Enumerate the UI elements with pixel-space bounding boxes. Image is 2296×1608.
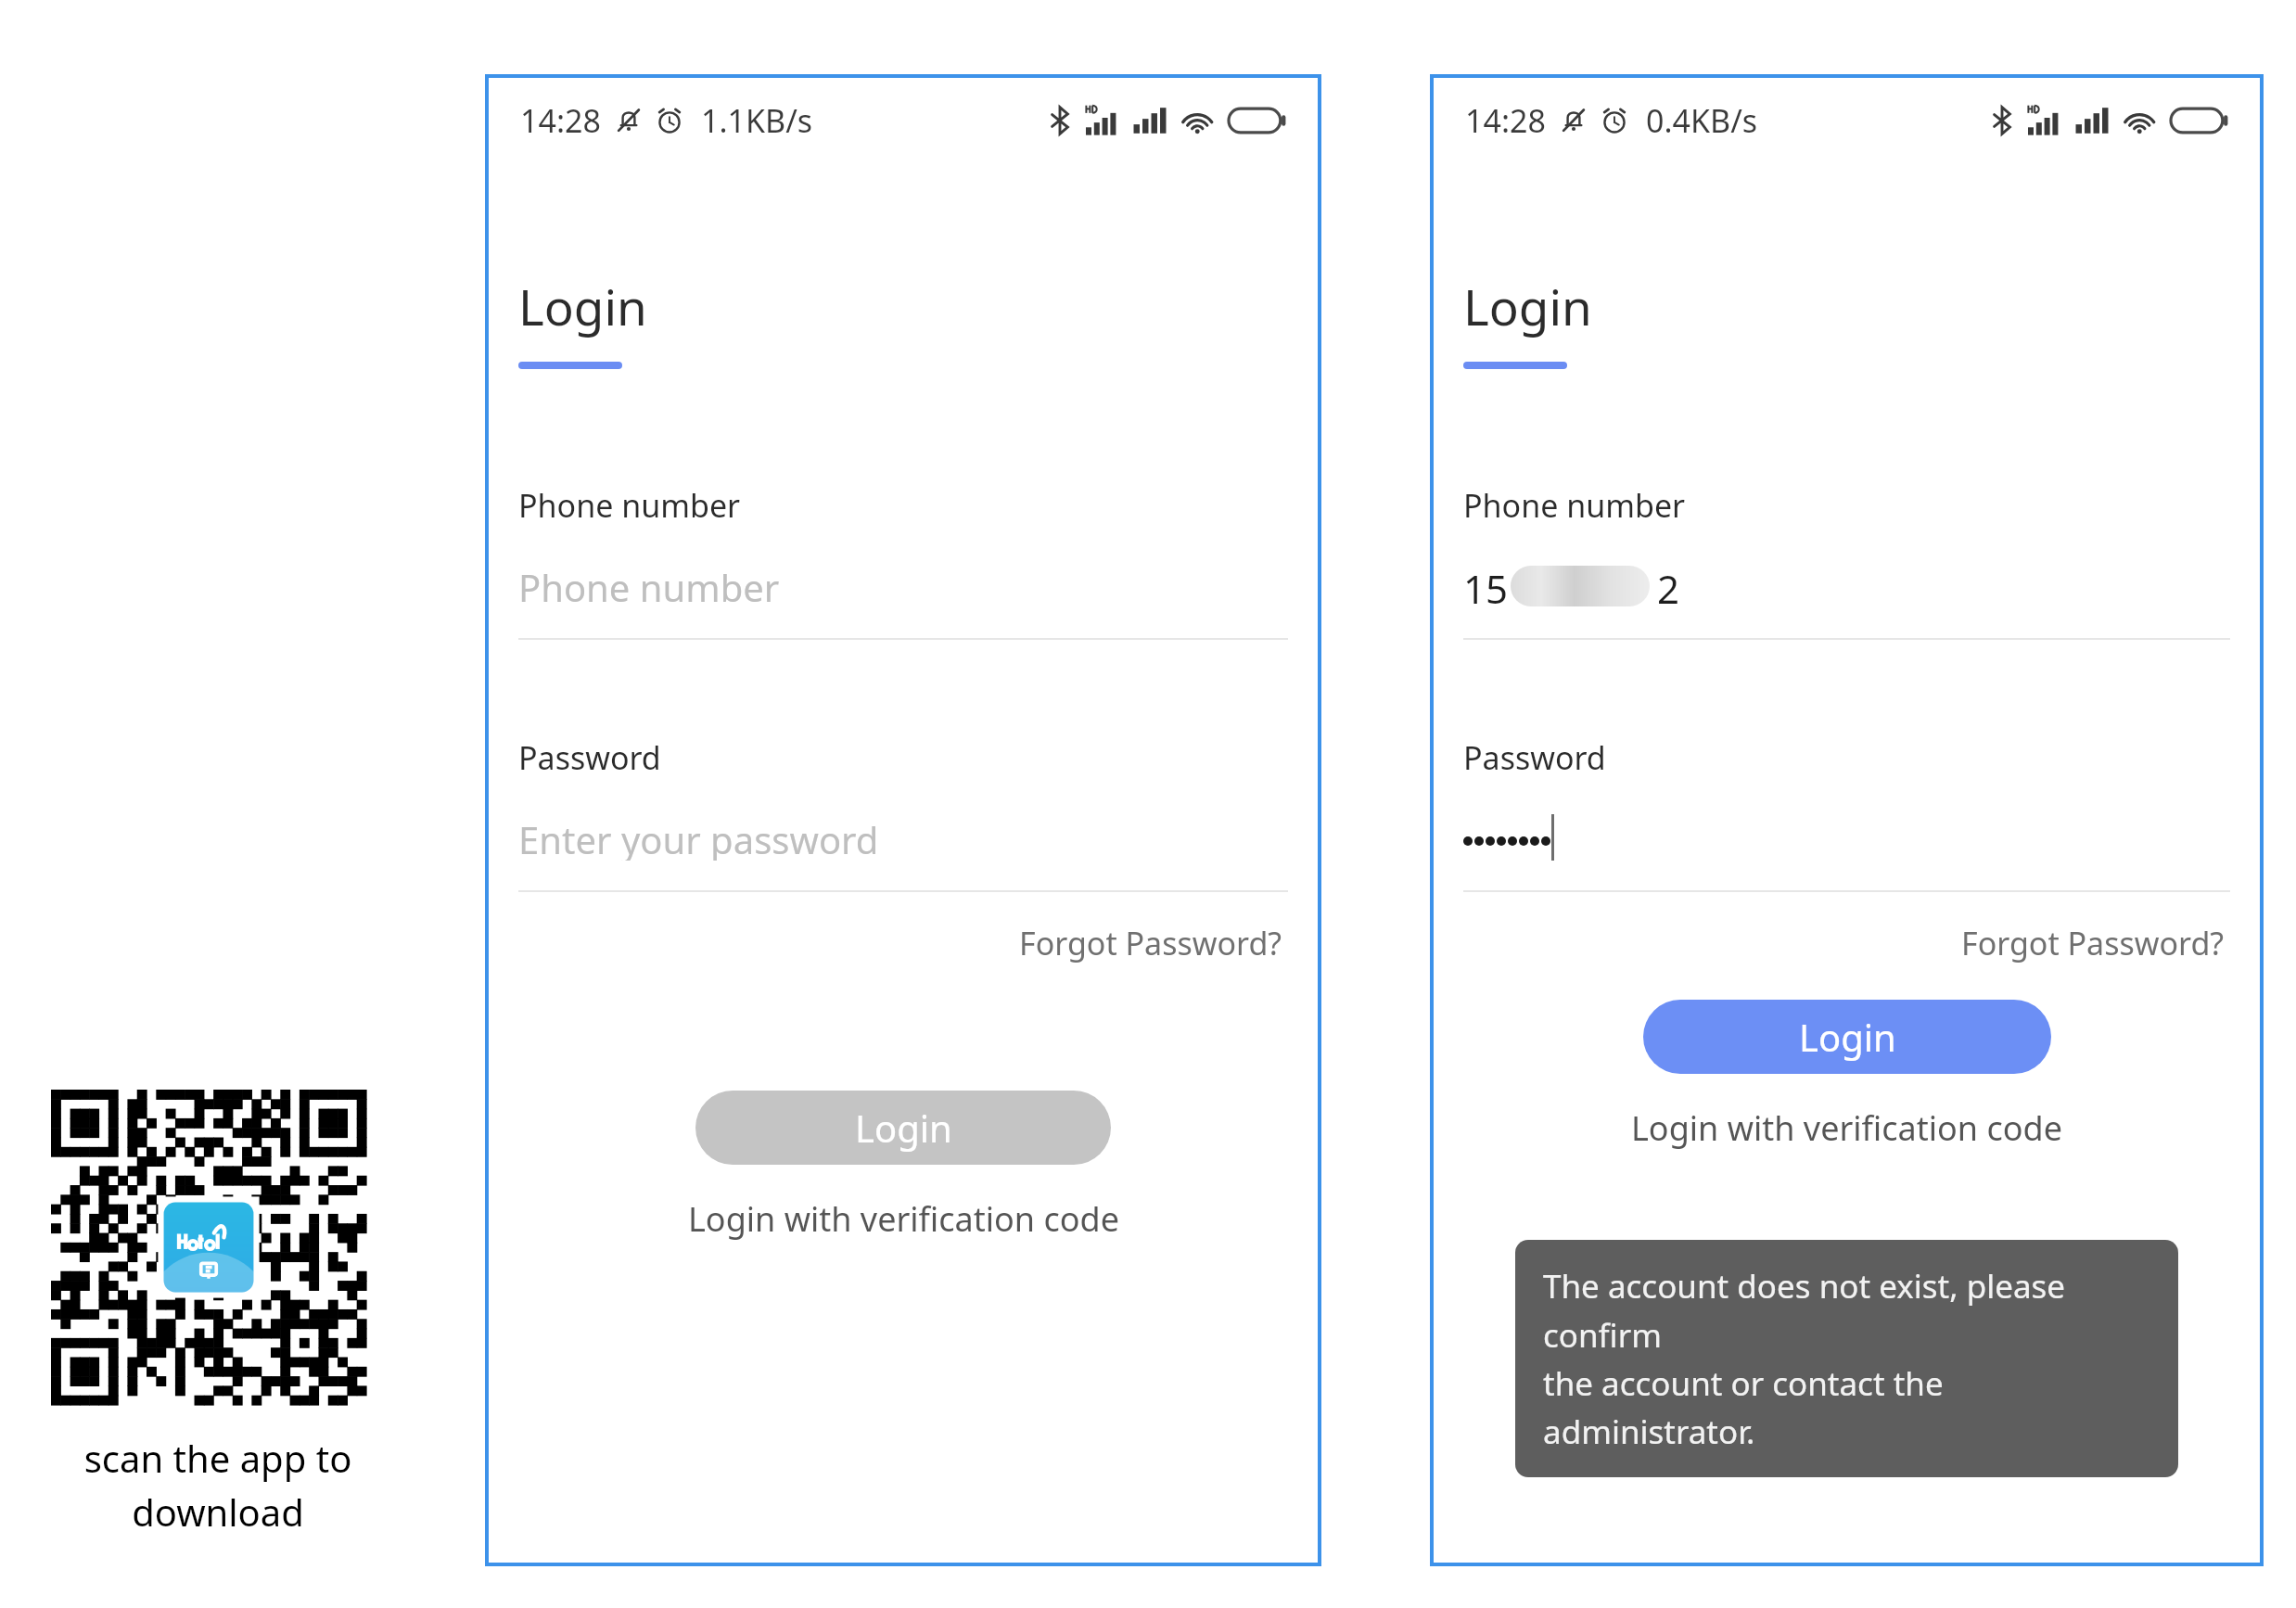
button[interactable]: QR code to download the app [51,1090,366,1405]
button[interactable]: Login [1643,1000,2051,1074]
staticText: Login [855,1103,952,1153]
staticText: Phone number [518,484,741,527]
staticText: Phone number [518,562,780,608]
staticText: Forgot Password? [1019,922,1282,964]
staticText: Forgot Password? [1961,922,2225,964]
staticText: 1.1KB/s [701,99,813,142]
button[interactable]: Forgot Password? [1014,916,1288,970]
staticText: Phone number [1463,484,1686,527]
staticText: Enter your password [518,814,879,861]
button[interactable]: Login [1463,273,1592,339]
staticText: 2 [1657,562,1680,608]
button[interactable]: Forgot Password? [1956,916,2230,970]
staticText: scan the app to download [0,1433,436,1537]
staticText: Login [518,273,647,339]
button[interactable]: Login [695,1091,1111,1165]
staticText: Login [1799,1012,1896,1062]
staticText: 14:28 [1465,99,1546,142]
staticText: Login with verification code [688,1196,1119,1242]
button[interactable]: Password [1463,736,2230,892]
staticText: 0.4KB/s [1646,99,1758,142]
button[interactable]: Phone number [1463,484,2230,640]
button[interactable]: Login with verification code [682,1191,1125,1247]
staticText: The account does not exist, please confi… [1543,1264,2150,1453]
button[interactable]: Login [518,273,647,339]
staticText: Password [1463,736,1606,779]
button[interactable]: Login with verification code [1626,1100,2068,1156]
button[interactable]: Phone number [518,484,1288,640]
staticText: Login [1463,273,1592,339]
staticText: Login with verification code [1631,1105,2062,1151]
staticText: 14:28 [520,99,601,142]
button[interactable]: Password [518,736,1288,892]
staticText: 15 [1463,562,1509,608]
staticText: Password [518,736,661,779]
